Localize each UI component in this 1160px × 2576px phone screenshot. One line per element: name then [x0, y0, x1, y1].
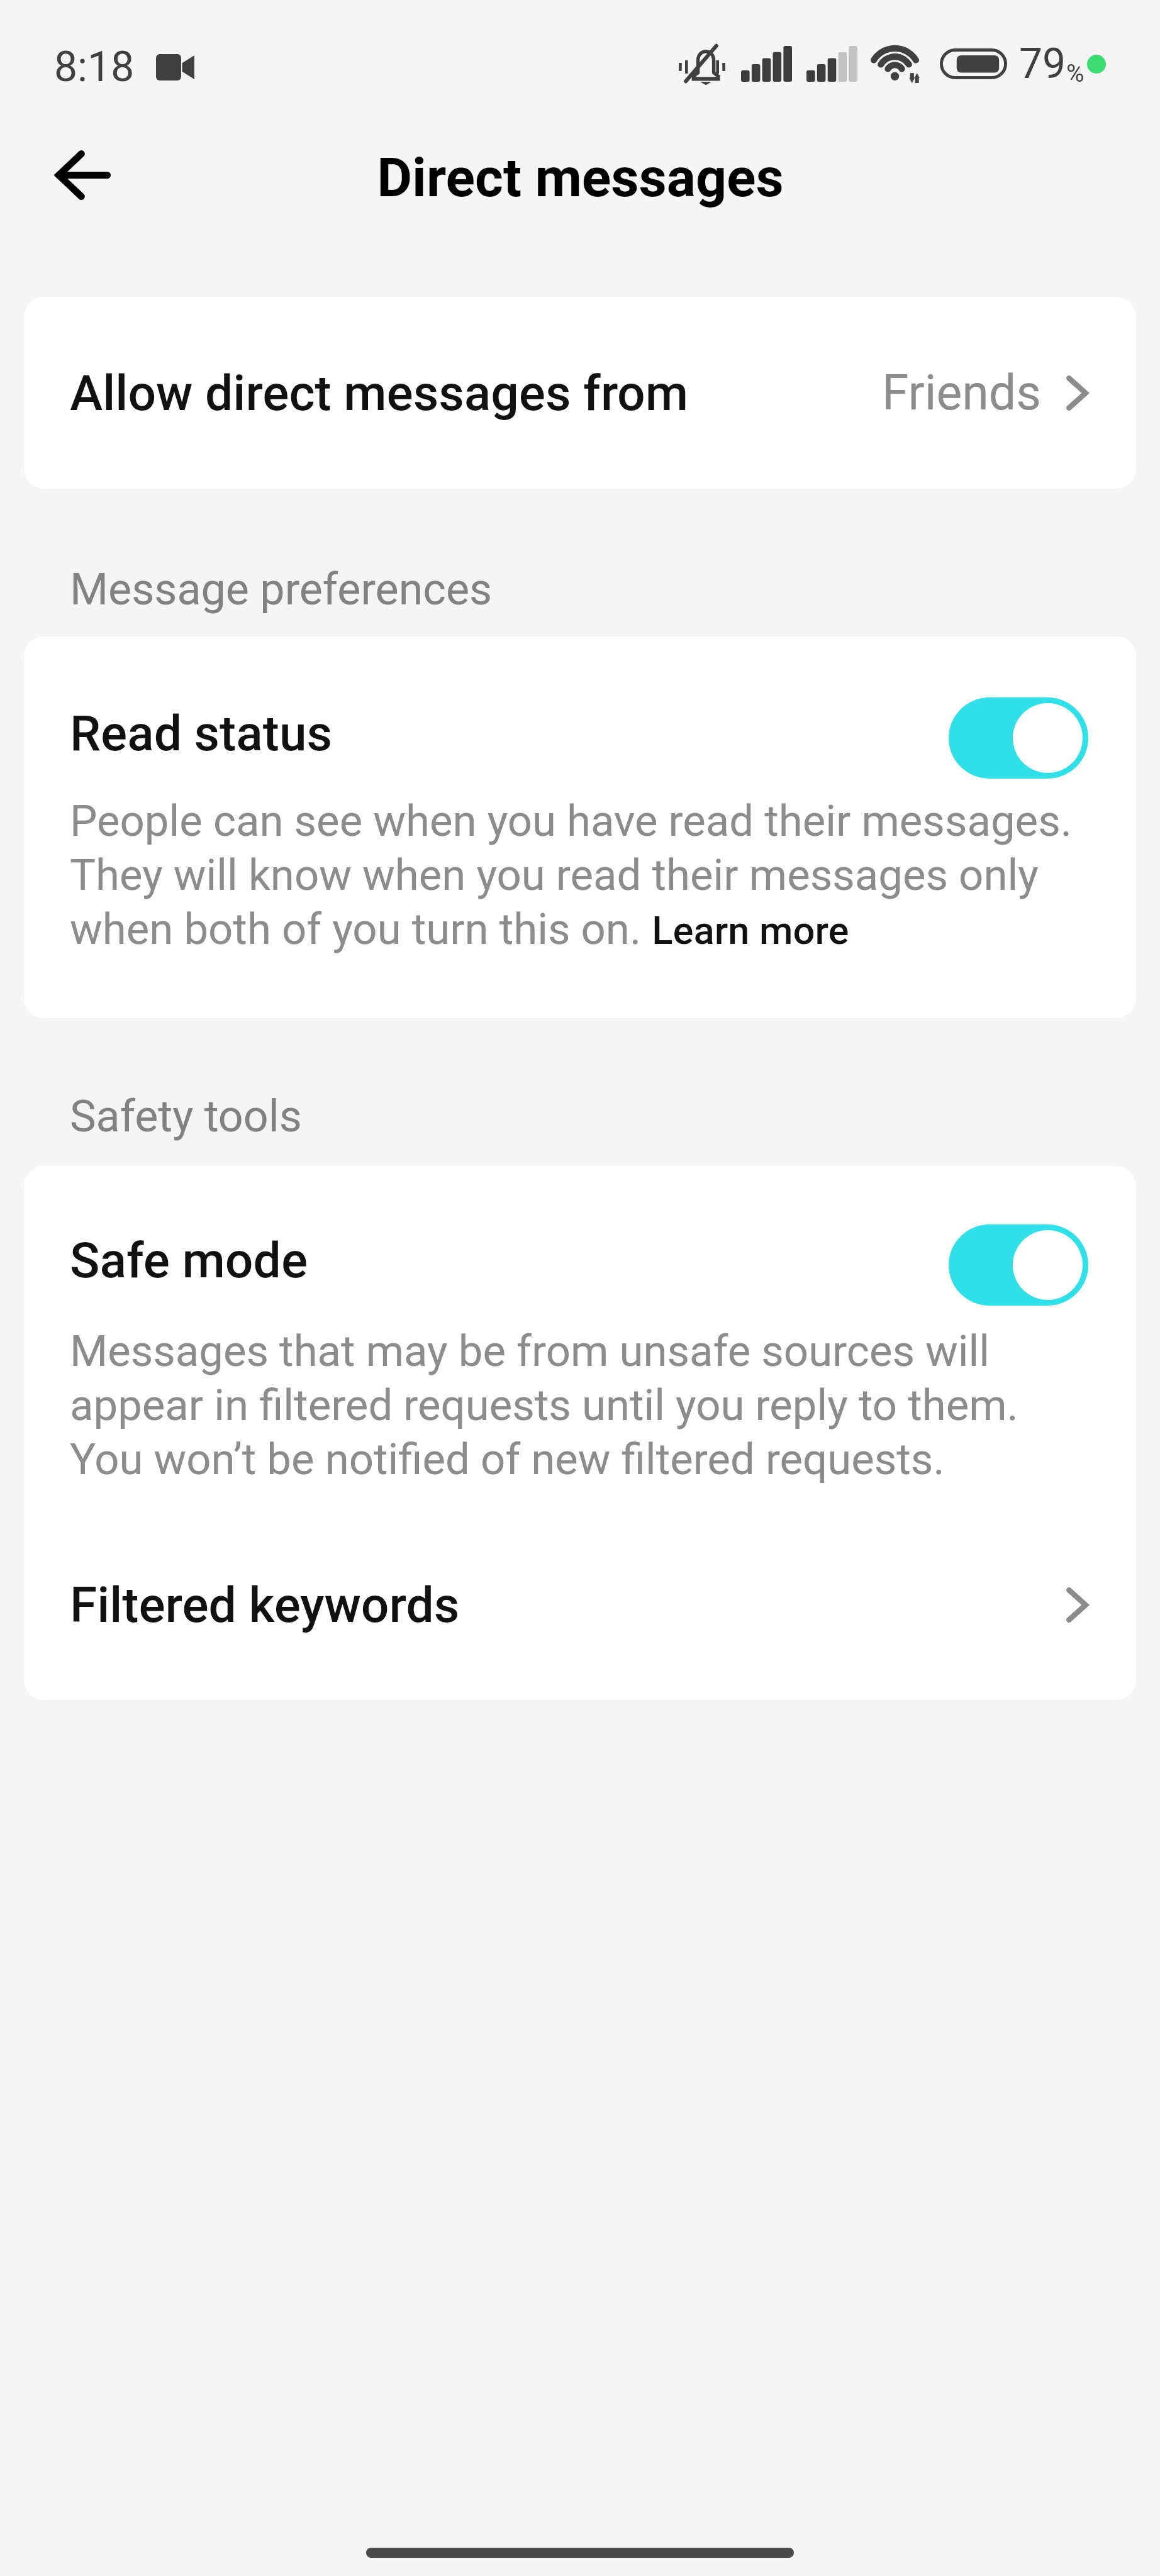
staticText: 8:18 [54, 43, 135, 91]
button[interactable]: Read status toggle [949, 697, 1088, 779]
staticText: Friends [882, 365, 1041, 421]
button[interactable]: Back [39, 131, 127, 219]
staticText: 79 [1019, 40, 1066, 88]
staticText: People can see when you have read their … [70, 793, 1088, 955]
staticText: Message preferences [70, 563, 493, 615]
button[interactable]: Filtered keywords [24, 1510, 1136, 1700]
staticText: % [1066, 59, 1085, 88]
staticText: Filtered keywords [70, 1576, 460, 1634]
button[interactable]: Allow direct messages from [24, 297, 1136, 489]
button[interactable]: Safe mode toggle [949, 1224, 1088, 1306]
staticText: Allow direct messages from [70, 364, 689, 422]
staticText: Messages that may be from unsafe sources… [70, 1323, 1088, 1485]
staticText: Read status [70, 704, 333, 762]
staticText: Safety tools [70, 1091, 302, 1142]
staticText: Direct messages [377, 146, 784, 209]
staticText: Safe mode [70, 1231, 308, 1289]
